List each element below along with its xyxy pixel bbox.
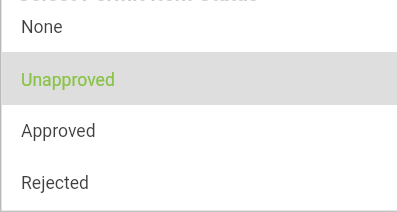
button[interactable]: Approved bbox=[2, 105, 397, 156]
button[interactable]: None bbox=[2, 0, 397, 52]
button[interactable]: Unapproved bbox=[2, 52, 397, 105]
staticText: None bbox=[21, 17, 63, 38]
staticText: Approved bbox=[21, 121, 96, 142]
staticText: Unapproved bbox=[21, 70, 115, 91]
button[interactable]: Select Permit Item Status bbox=[17, 0, 259, 7]
staticText: Rejected bbox=[21, 173, 89, 194]
staticText: Select Permit Item Status bbox=[17, 0, 259, 7]
button[interactable]: Rejected bbox=[2, 157, 397, 209]
